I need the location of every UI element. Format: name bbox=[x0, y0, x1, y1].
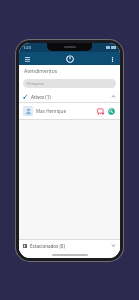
staticText: Ativos (1) bbox=[31, 94, 51, 100]
staticText: 1:23 bbox=[23, 45, 31, 50]
staticText: Estacionados (0) bbox=[30, 243, 65, 249]
button[interactable]: Search contact bbox=[107, 107, 116, 116]
staticText: Atendimentos bbox=[24, 68, 58, 75]
button[interactable]: Menu bbox=[22, 54, 32, 64]
button[interactable]: Estacionados (0) bbox=[19, 240, 120, 251]
button[interactable]: Ativos (1) bbox=[19, 91, 120, 102]
button[interactable]: Power bbox=[64, 53, 76, 65]
button[interactable]: Pesquisa bbox=[23, 79, 116, 88]
button[interactable]: More options bbox=[107, 54, 117, 64]
staticText: Pesquisa bbox=[27, 81, 44, 86]
staticText: Max Henrique bbox=[36, 108, 66, 114]
button[interactable]: Max Henrique bbox=[19, 103, 120, 119]
button[interactable]: Chat bbox=[96, 107, 105, 116]
